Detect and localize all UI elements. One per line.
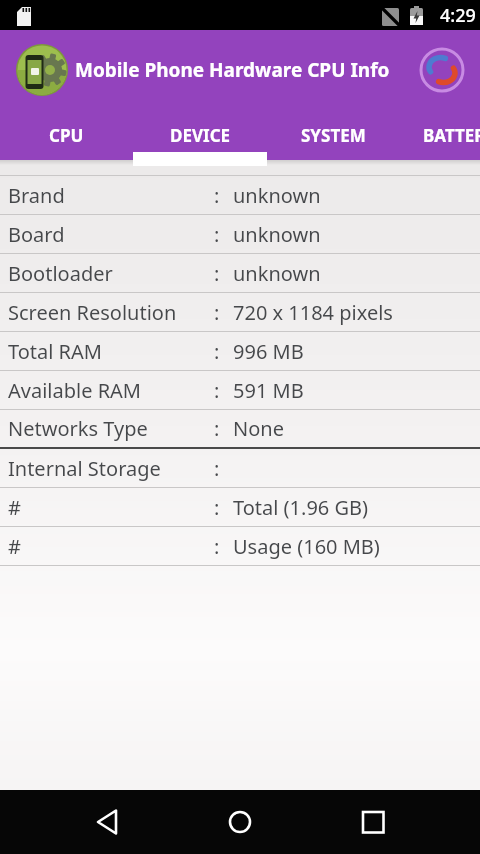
button[interactable]	[76, 790, 140, 854]
staticText: Screen Resolution	[8, 299, 177, 326]
button[interactable]: BATTERY	[423, 110, 480, 160]
button[interactable]	[419, 47, 465, 93]
staticText: 4:29	[440, 3, 476, 28]
staticText: :	[214, 260, 220, 287]
staticText: Internal Storage	[8, 455, 161, 482]
staticText: #	[8, 533, 21, 560]
staticText: :	[214, 221, 220, 248]
staticText: Bootloader	[8, 260, 113, 287]
staticText: Total (1.96 GB)	[233, 494, 369, 521]
staticText: #	[8, 494, 21, 521]
staticText: None	[233, 415, 284, 442]
staticText: :	[214, 455, 220, 482]
staticText: :	[214, 377, 220, 404]
button[interactable]: Internal Storage	[0, 449, 480, 488]
staticText: Board	[8, 221, 65, 248]
button[interactable]: CPU	[0, 110, 133, 160]
button[interactable]: Brand	[0, 176, 480, 215]
staticText: :	[214, 415, 220, 442]
button[interactable]: Available RAM	[0, 371, 480, 410]
staticText: :	[214, 494, 220, 521]
staticText: :	[214, 299, 220, 326]
staticText: 720 x 1184 pixels	[233, 299, 393, 326]
button[interactable]: #	[0, 488, 480, 527]
button[interactable]: #	[0, 527, 480, 566]
button[interactable]: Bootloader	[0, 254, 480, 293]
staticText: :	[214, 182, 220, 209]
staticText: 996 MB	[233, 338, 304, 365]
staticText: Networks Type	[8, 415, 148, 442]
staticText: Brand	[8, 182, 65, 209]
button[interactable]: Networks Type	[0, 410, 480, 449]
button[interactable]: Screen Resolution	[0, 293, 480, 332]
staticText: Usage (160 MB)	[233, 533, 380, 560]
staticText: Available RAM	[8, 377, 141, 404]
staticText: DEVICE	[170, 124, 231, 147]
staticText: unknown	[233, 221, 321, 248]
button[interactable]: DEVICE	[133, 110, 267, 160]
staticText: SYSTEM	[301, 124, 366, 147]
staticText: :	[214, 533, 220, 560]
staticText: Total RAM	[8, 338, 102, 365]
button[interactable]	[341, 790, 405, 854]
staticText: :	[214, 338, 220, 365]
staticText: Mobile Phone Hardware CPU Info	[75, 57, 390, 83]
button[interactable]: Board	[0, 215, 480, 254]
staticText: 591 MB	[233, 377, 304, 404]
staticText: BATTERY	[423, 124, 480, 147]
staticText: unknown	[233, 260, 321, 287]
staticText: unknown	[233, 182, 321, 209]
button[interactable]: Total RAM	[0, 332, 480, 371]
button[interactable]: SYSTEM	[267, 110, 400, 160]
button[interactable]	[208, 790, 272, 854]
staticText: CPU	[49, 124, 84, 147]
